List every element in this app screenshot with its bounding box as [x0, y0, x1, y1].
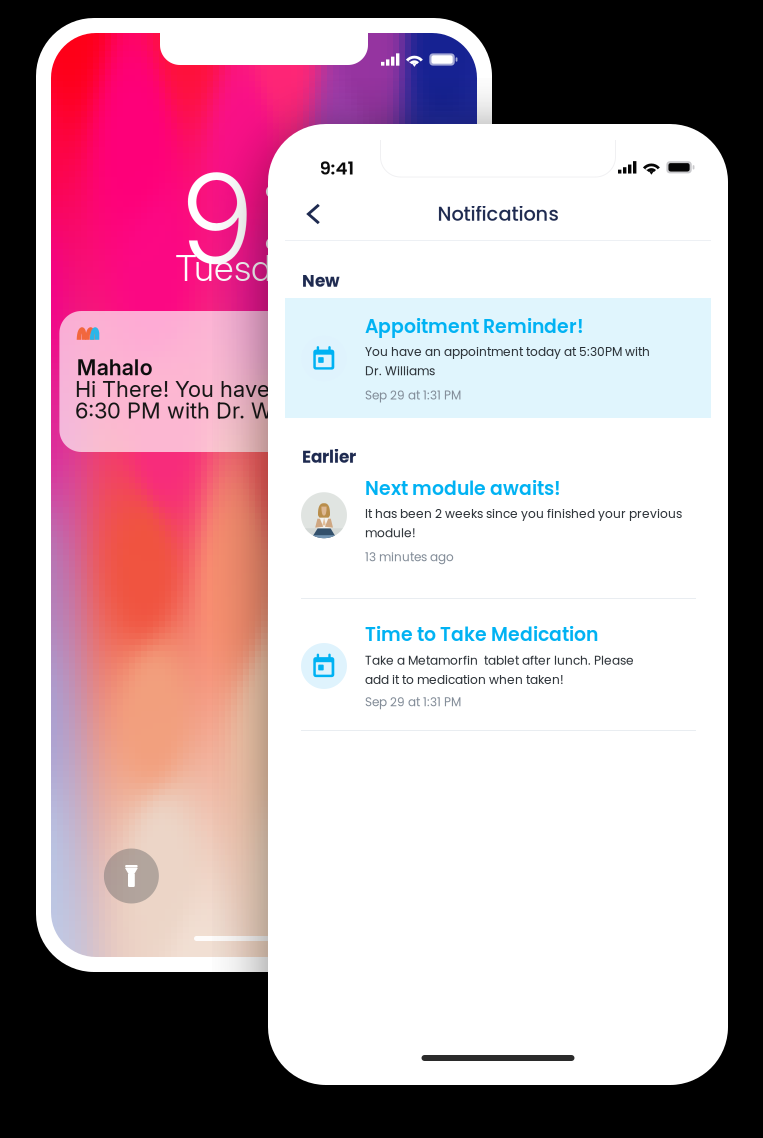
- staticText: module!: [365, 524, 416, 541]
- staticText: Appoitment Reminder!: [365, 313, 584, 339]
- staticText: 6:30 PM with Dr. Williams: [75, 397, 334, 424]
- staticText: Hi There! You have an appointment today …: [75, 376, 523, 402]
- staticText: Mahalo: [77, 355, 153, 380]
- staticText: Sep 29 at 1:31 PM: [365, 694, 461, 710]
- staticText: Tuesday, September 29: [175, 246, 549, 290]
- staticText: Take a Metamorfin tablet after lunch. Pl…: [365, 652, 634, 669]
- staticText: It has been 2 weeks since you finished y…: [365, 505, 682, 522]
- button[interactable]: Back: [290, 191, 336, 237]
- staticText: Dr. Williams: [365, 362, 435, 379]
- button[interactable]: Next module awaits!: [285, 470, 711, 598]
- button[interactable]: Appoitment Reminder!: [285, 298, 711, 418]
- staticText: 9:41: [320, 155, 355, 181]
- staticText: Sep 29 at 1:31 PM: [365, 387, 461, 404]
- staticText: Time to Take Medication: [365, 621, 598, 647]
- staticText: You have an appointment today at 5:30PM …: [365, 343, 650, 360]
- staticText: Earlier: [302, 445, 356, 469]
- staticText: Notifications: [437, 200, 558, 227]
- button[interactable]: Flashlight: [104, 848, 159, 903]
- staticText: New: [302, 269, 340, 292]
- staticText: 9:41: [180, 143, 415, 293]
- button[interactable]: Time to Take Medication: [285, 599, 711, 730]
- staticText: add it to medication when taken!: [365, 671, 564, 688]
- staticText: 13 minutes ago: [365, 549, 454, 565]
- staticText: Next module awaits!: [365, 475, 561, 501]
